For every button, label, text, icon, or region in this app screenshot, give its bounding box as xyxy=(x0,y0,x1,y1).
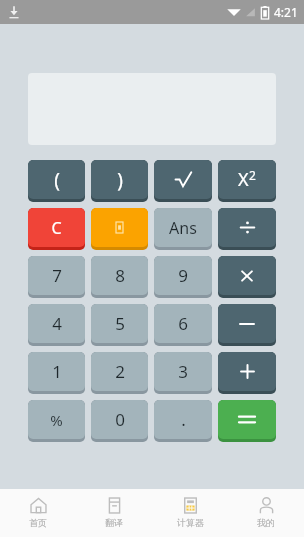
staticText: 0 xyxy=(115,408,125,431)
staticText: 我的 xyxy=(257,517,275,528)
button[interactable]: C xyxy=(28,208,85,250)
staticText: Ans xyxy=(169,217,197,239)
button[interactable]: Minus xyxy=(218,304,276,346)
staticText: 翻译 xyxy=(105,517,123,528)
button[interactable]: . xyxy=(154,400,212,442)
button[interactable]: ) xyxy=(91,160,148,202)
button[interactable]: 计算器 xyxy=(152,489,228,537)
staticText: 7 xyxy=(52,264,62,287)
staticText: C xyxy=(51,217,62,239)
staticText: 4:21 xyxy=(274,4,298,20)
button[interactable]: 6 xyxy=(154,304,212,346)
button[interactable]: ( xyxy=(28,160,85,202)
staticText: 6 xyxy=(178,312,188,335)
button[interactable]: 1 xyxy=(28,352,85,394)
staticText: 首页 xyxy=(29,517,47,528)
staticText: % xyxy=(50,410,63,430)
staticText: ( xyxy=(54,167,60,193)
button[interactable]: Ans xyxy=(154,208,212,250)
button[interactable]: 3 xyxy=(154,352,212,394)
button[interactable]: 首页 xyxy=(0,489,76,537)
button[interactable]: 2 xyxy=(91,352,148,394)
button[interactable]: Plus xyxy=(218,352,276,394)
button[interactable]: 8 xyxy=(91,256,148,298)
button[interactable]: 翻译 xyxy=(76,489,152,537)
button[interactable]: Equals xyxy=(218,400,276,442)
button[interactable]: Square xyxy=(218,160,276,202)
button[interactable]: 4 xyxy=(28,304,85,346)
button[interactable]: Divide xyxy=(218,208,276,250)
button[interactable]: Multiply xyxy=(218,256,276,298)
button[interactable]: 9 xyxy=(154,256,212,298)
staticText: X xyxy=(238,167,249,192)
button[interactable]: 7 xyxy=(28,256,85,298)
button[interactable]: Backspace xyxy=(91,208,148,250)
button[interactable]: Square root xyxy=(154,160,212,202)
button[interactable]: % xyxy=(28,400,85,442)
button[interactable]: 5 xyxy=(91,304,148,346)
staticText: 计算器 xyxy=(177,517,204,528)
staticText: 1 xyxy=(52,360,62,383)
staticText: 4 xyxy=(52,312,62,335)
staticText: 2 xyxy=(115,360,125,383)
staticText: ) xyxy=(117,167,123,193)
staticText: 8 xyxy=(115,264,125,287)
staticText: 9 xyxy=(178,264,188,287)
button[interactable]: 0 xyxy=(91,400,148,442)
staticText: 3 xyxy=(178,360,188,383)
staticText: 2 xyxy=(249,167,256,183)
button[interactable]: 我的 xyxy=(228,489,304,537)
staticText: 5 xyxy=(115,312,125,335)
staticText: . xyxy=(181,408,186,431)
